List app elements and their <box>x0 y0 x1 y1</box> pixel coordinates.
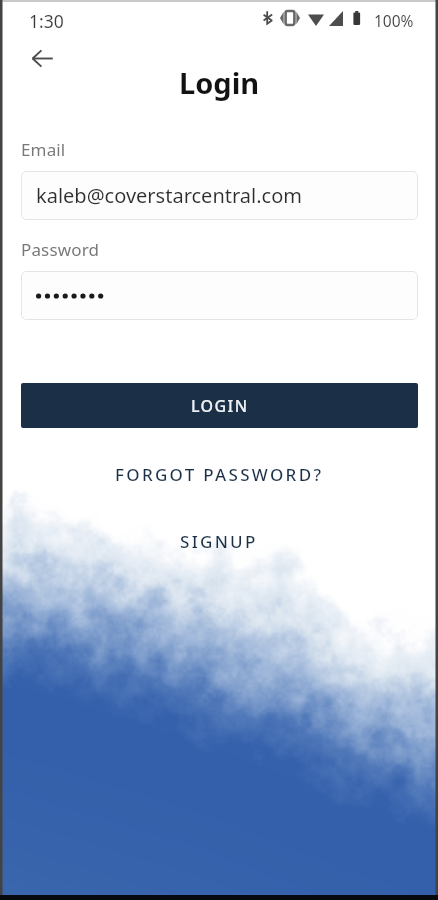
button[interactable] <box>21 271 418 320</box>
staticText: FORGOT PASSWORD? <box>115 463 324 486</box>
button[interactable]: Back <box>22 38 62 78</box>
button[interactable]: kaleb@coverstarcentral.com <box>21 171 418 220</box>
staticText: Email <box>21 138 66 161</box>
button[interactable]: FORGOT PASSWORD? <box>0 461 438 487</box>
button[interactable]: LOGIN <box>21 383 418 428</box>
staticText: 100% <box>374 10 414 31</box>
button[interactable]: SIGNUP <box>0 528 438 554</box>
staticText: kaleb@coverstarcentral.com <box>36 182 302 209</box>
staticText: 1:30 <box>29 9 64 33</box>
staticText: Password <box>21 238 100 261</box>
staticText: SIGNUP <box>180 530 258 553</box>
staticText: Login <box>179 63 260 102</box>
staticText: LOGIN <box>191 395 249 417</box>
